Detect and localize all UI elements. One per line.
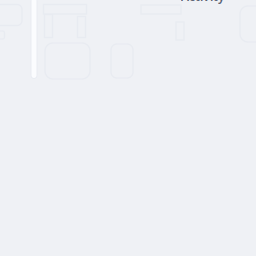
staticText: Activity [181, 0, 225, 4]
